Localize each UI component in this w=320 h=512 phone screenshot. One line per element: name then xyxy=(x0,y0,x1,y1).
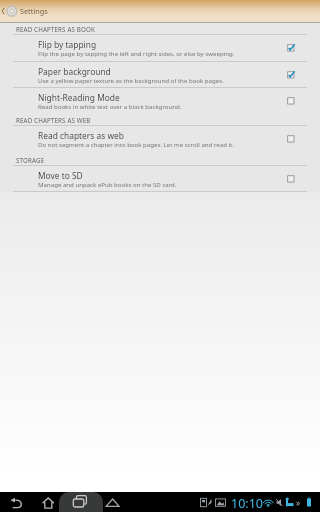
button[interactable]: Unchecked xyxy=(280,130,298,148)
button[interactable]: Unchecked xyxy=(280,92,298,110)
button[interactable]: Flip by tapping xyxy=(0,35,320,62)
staticText: READ CHAPTERS AS WEB xyxy=(16,116,91,124)
button[interactable]: Home xyxy=(38,492,59,512)
button[interactable]: Night-Reading Mode xyxy=(0,88,320,114)
staticText: Night-Reading Mode xyxy=(38,92,120,103)
staticText: Read books in white text over a black ba… xyxy=(38,102,182,110)
staticText: Manage and unpack ePub books on the SD c… xyxy=(38,180,177,188)
button[interactable]: Settings xyxy=(5,0,47,22)
staticText: Read chapters as web xyxy=(38,130,124,141)
staticText: Use a yellow paper texture as the backgr… xyxy=(38,76,224,84)
staticText: Flip the page by tapping the left and ri… xyxy=(38,49,235,57)
staticText: Move to SD xyxy=(38,170,83,181)
button[interactable]: Move to SD xyxy=(0,166,320,192)
button[interactable]: Unchecked xyxy=(280,170,298,188)
button[interactable]: Back xyxy=(6,492,27,512)
staticText: STORAGE xyxy=(16,156,45,164)
button[interactable]: Paper background xyxy=(0,62,320,88)
staticText: Paper background xyxy=(38,66,111,77)
button[interactable]: Read chapters as web xyxy=(0,126,320,152)
button[interactable]: Hide xyxy=(104,492,121,512)
staticText: » xyxy=(296,497,301,508)
button[interactable]: Recent apps xyxy=(70,492,91,512)
staticText: Do not segment a chapter into book pages… xyxy=(38,140,234,148)
staticText: READ CHAPTERS AS BOOK xyxy=(16,25,95,33)
button[interactable]: Navigate up xyxy=(0,0,6,22)
staticText: Settings xyxy=(20,6,48,16)
staticText: Flip by tapping xyxy=(38,39,97,50)
button[interactable]: Checked xyxy=(280,39,298,57)
button[interactable]: Checked xyxy=(280,66,298,84)
staticText: 10:10 xyxy=(231,495,263,512)
